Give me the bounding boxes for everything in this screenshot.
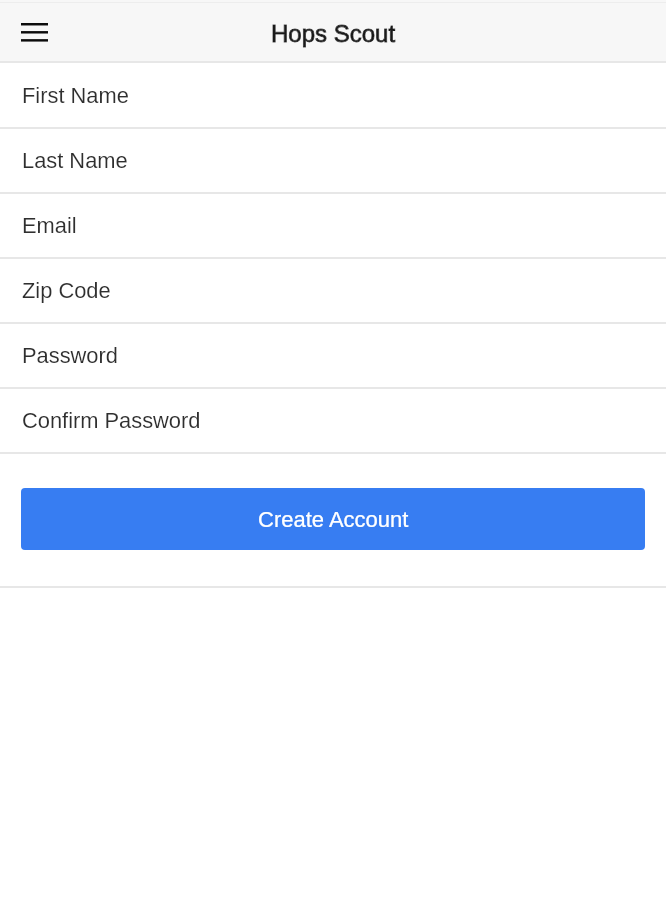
button[interactable]: Password [0, 323, 666, 387]
staticText: Last Name [22, 148, 128, 172]
staticText: Create Account [258, 507, 409, 532]
staticText: Password [22, 343, 118, 367]
button[interactable]: Email [0, 193, 666, 257]
button[interactable]: Create Account [21, 488, 645, 550]
staticText: Zip Code [22, 278, 111, 302]
staticText: Email [22, 213, 77, 237]
staticText: Hops Scout [271, 20, 396, 47]
staticText: Confirm Password [22, 408, 201, 432]
button[interactable]: First Name [0, 63, 666, 127]
staticText: First Name [22, 83, 129, 107]
button[interactable]: Zip Code [0, 258, 666, 322]
button[interactable]: Last Name [0, 128, 666, 192]
staticText: Hops Scout [271, 20, 396, 47]
button[interactable]: Confirm Password [0, 388, 666, 452]
button[interactable]: Open navigation menu [6, 4, 60, 58]
